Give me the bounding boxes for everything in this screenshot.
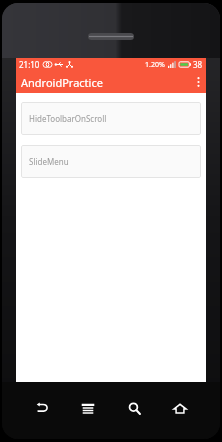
staticText: 1.20% — [145, 60, 165, 70]
button[interactable]: Home — [166, 394, 194, 422]
staticText: 21:10 — [19, 59, 40, 70]
button[interactable]: Search — [120, 394, 148, 422]
staticText: AndroidPractice — [21, 75, 103, 90]
button[interactable]: SlideMenu — [21, 145, 201, 178]
button[interactable]: HideToolbarOnScroll — [21, 102, 201, 135]
button[interactable]: More options — [190, 71, 206, 93]
button[interactable]: Back — [28, 394, 56, 422]
button[interactable]: Menu — [74, 394, 102, 422]
staticText: HideToolbarOnScroll — [29, 113, 107, 124]
staticText: SlideMenu — [29, 156, 69, 167]
staticText: 38 — [193, 59, 203, 70]
